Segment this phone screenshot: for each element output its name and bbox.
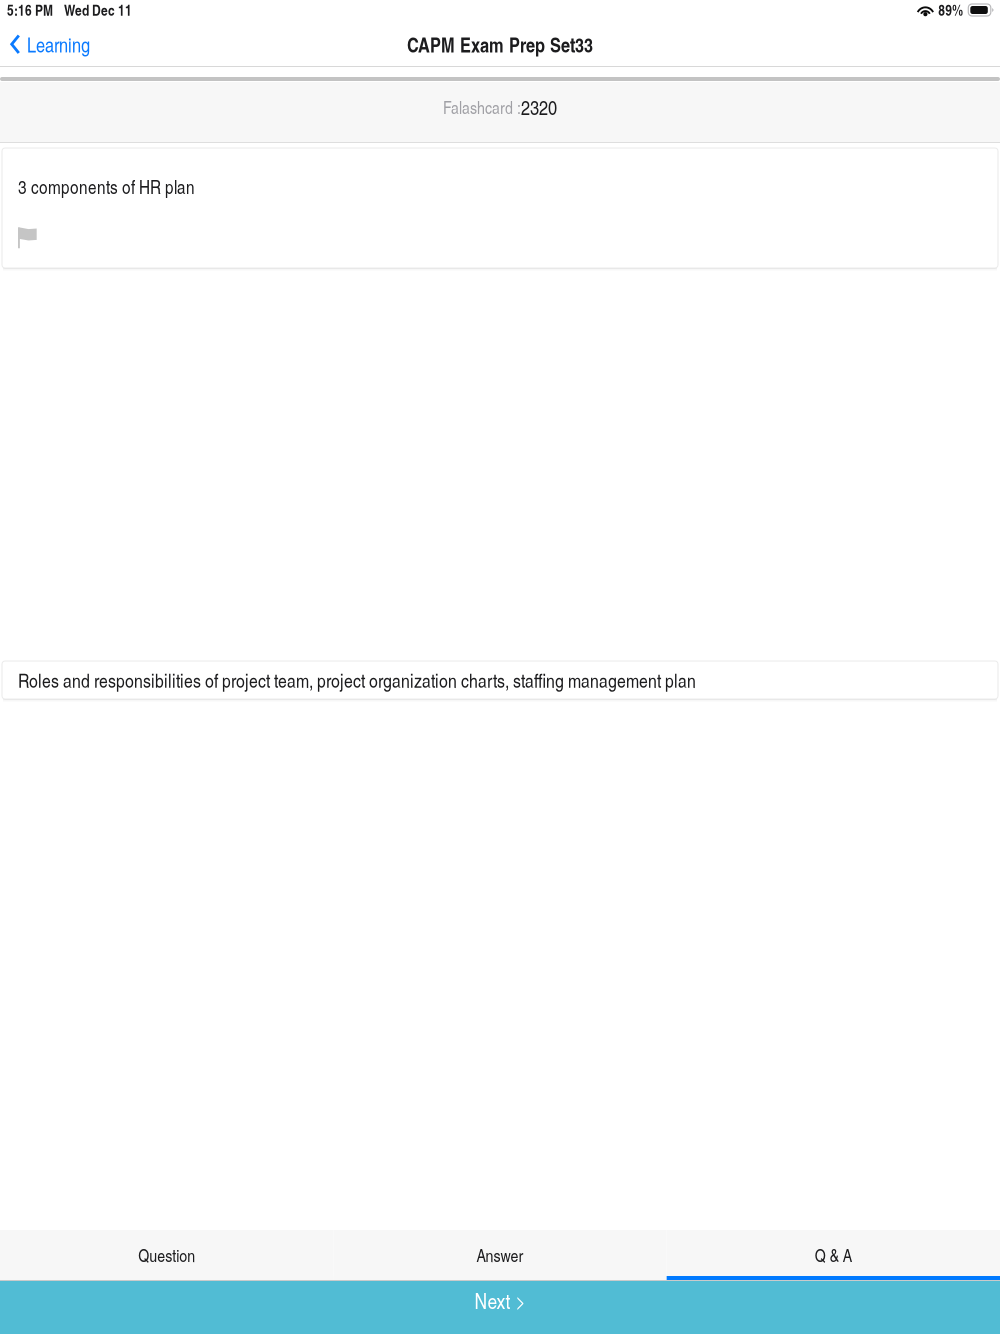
button[interactable]: Learning (0, 27, 104, 66)
staticText: Learning (27, 31, 90, 58)
button[interactable]: Q & A (667, 1230, 1000, 1280)
button[interactable]: Question (0, 1230, 333, 1280)
staticText: Answer (476, 1243, 523, 1267)
staticText: Wed Dec 11 (64, 0, 132, 20)
staticText: Roles and responsibilities of project te… (18, 667, 696, 693)
button[interactable]: Flag this card (2, 199, 51, 260)
staticText: 5:16 PM (7, 0, 53, 20)
staticText: 89% (938, 0, 963, 20)
button[interactable]: Next > (0, 1281, 1000, 1334)
staticText: 3 components of HR plan (18, 174, 195, 199)
staticText: Next > (474, 1286, 525, 1315)
staticText: Q & A (815, 1243, 852, 1267)
staticText: Falashcard : (443, 95, 521, 119)
button[interactable]: Answer (333, 1230, 667, 1280)
staticText: Question (138, 1243, 195, 1267)
staticText: 2320 (521, 93, 557, 121)
staticText: CAPM Exam Prep Set33 (407, 30, 593, 59)
